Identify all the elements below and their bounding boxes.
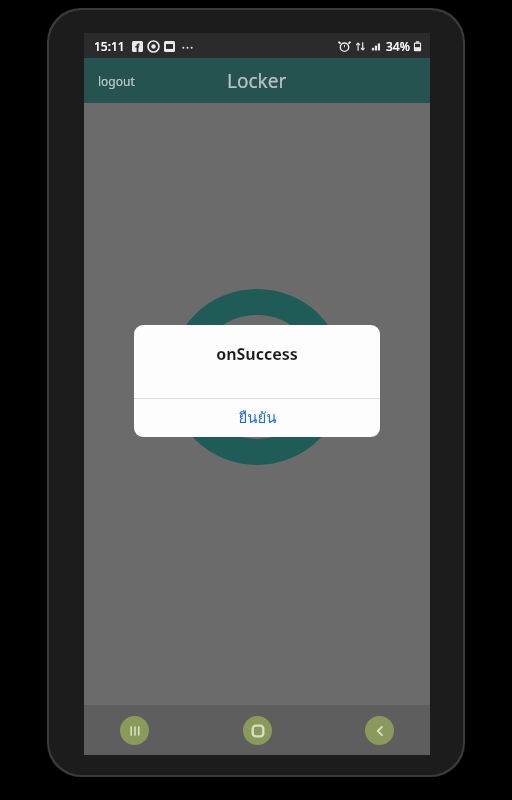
button[interactable]: ยืนยัน (134, 399, 380, 437)
staticText: Locker (227, 68, 287, 94)
staticText: ยืนยัน (238, 406, 277, 430)
button[interactable]: Back (365, 716, 394, 745)
button[interactable]: logout (88, 67, 145, 95)
staticText: logout (98, 73, 135, 89)
staticText: 34% (386, 38, 410, 54)
staticText: 15:11 (94, 38, 125, 54)
button[interactable]: Home (243, 716, 272, 745)
button[interactable]: Recent apps (120, 716, 149, 745)
staticText: onSuccess (216, 343, 298, 365)
